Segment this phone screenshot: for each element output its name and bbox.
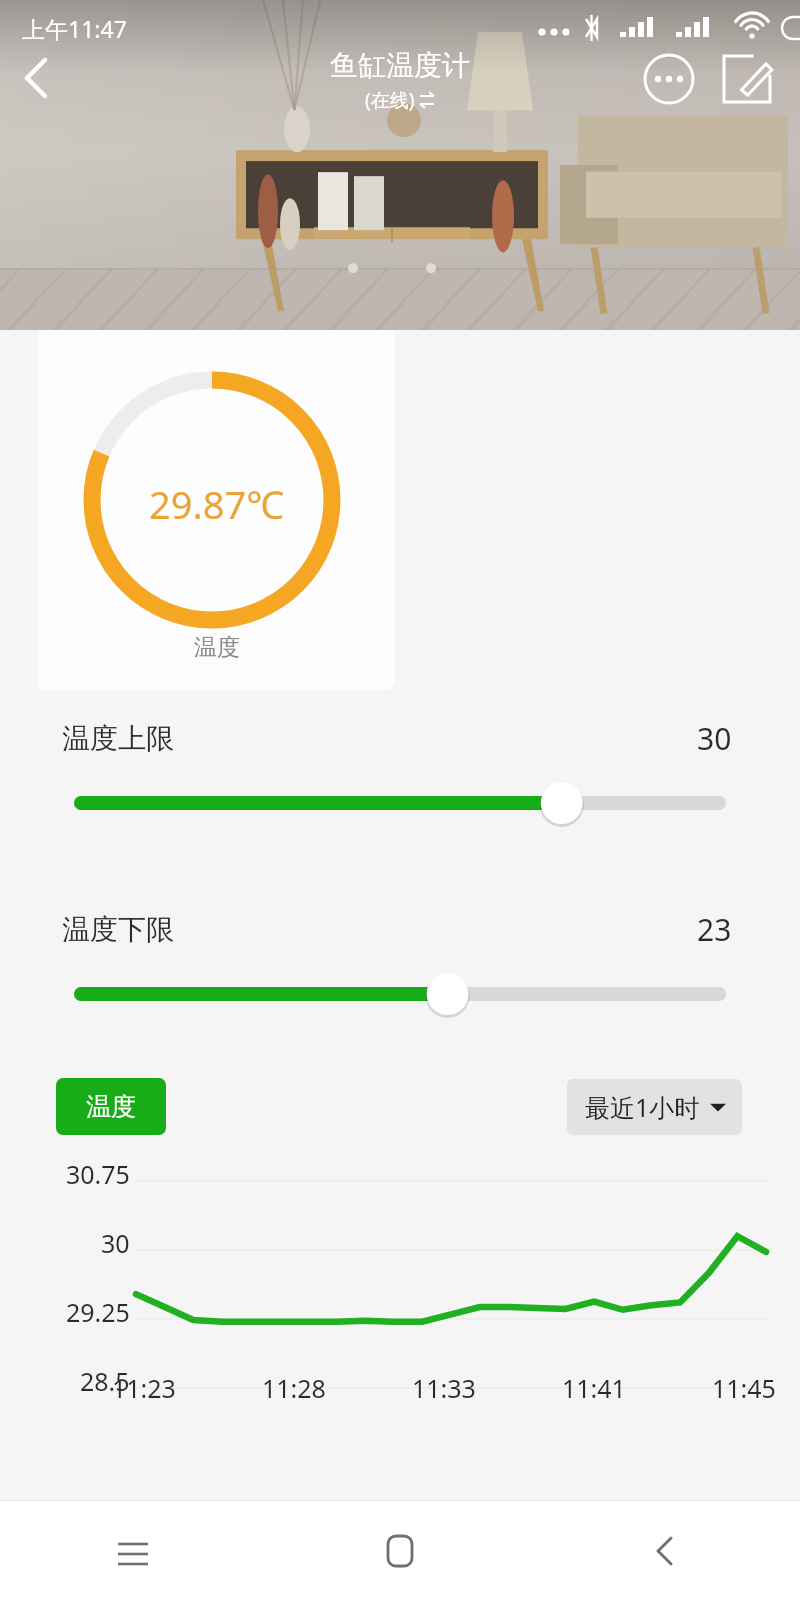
staticText: 30.75 xyxy=(66,1157,130,1191)
staticText: 30 xyxy=(101,1226,130,1260)
button[interactable]: More options xyxy=(642,52,696,106)
button[interactable]: Back xyxy=(533,1501,800,1600)
staticText: 29.87℃ xyxy=(149,478,284,530)
staticText: 11:23 xyxy=(112,1371,176,1405)
staticText: 鱼缸温度计 xyxy=(330,48,470,83)
staticText: 温度下限 xyxy=(62,912,174,947)
button[interactable]: 温度下限 xyxy=(0,909,800,1016)
button[interactable]: 温度上限 xyxy=(0,718,800,825)
button[interactable]: Back xyxy=(8,50,64,106)
staticText: 30 xyxy=(697,718,732,759)
button[interactable]: 29.87℃ xyxy=(38,330,395,690)
staticText: 23 xyxy=(697,909,732,950)
button[interactable]: 温度 xyxy=(56,1078,166,1135)
staticText: 温度上限 xyxy=(62,721,174,756)
staticText: (在线) xyxy=(365,87,415,113)
staticText: 29.25 xyxy=(66,1295,130,1329)
staticText: 温度 xyxy=(86,1091,136,1122)
staticText: 11:45 xyxy=(712,1371,776,1405)
button[interactable]: Edit xyxy=(720,52,774,106)
staticText: 温度 xyxy=(194,633,240,662)
staticText: 11:41 xyxy=(562,1371,626,1405)
button[interactable]: 最近1小时 xyxy=(567,1079,742,1135)
button[interactable]: Home xyxy=(266,1501,533,1600)
staticText: 最近1小时 xyxy=(585,1090,700,1124)
staticText: 11:33 xyxy=(412,1371,476,1405)
button[interactable]: Recent apps xyxy=(0,1501,266,1600)
staticText: 上午11:47 xyxy=(22,13,127,44)
staticText: 11:28 xyxy=(262,1371,326,1405)
staticText: 28.5 xyxy=(80,1364,130,1398)
